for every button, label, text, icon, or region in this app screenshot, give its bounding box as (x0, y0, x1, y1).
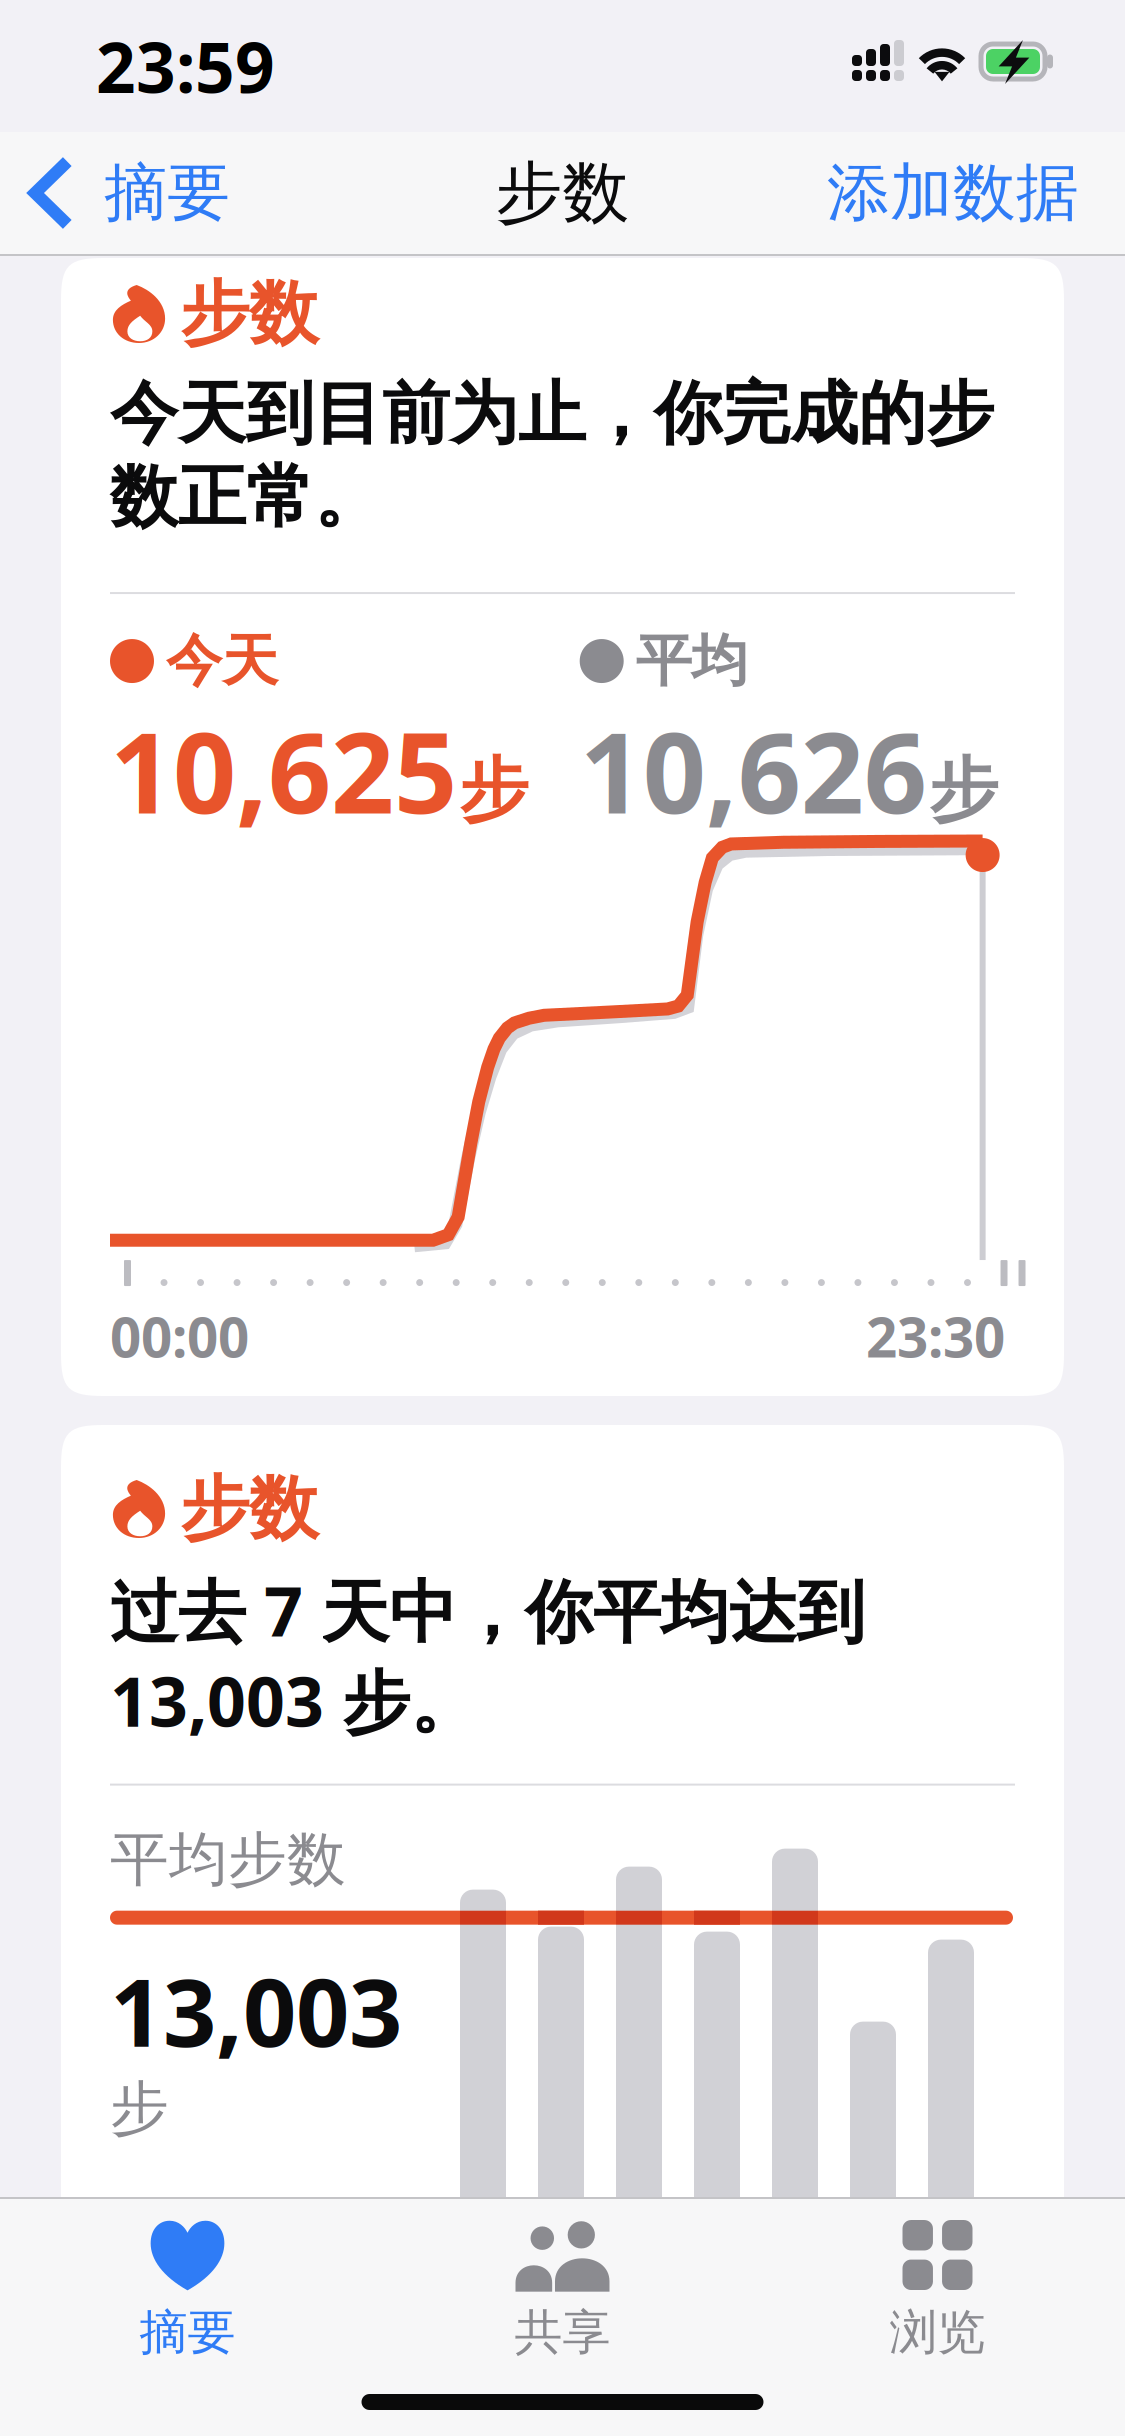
staticText: 今天到目前为止，你完成的步数正常。 (110, 372, 994, 539)
staticText: 共享 (514, 2303, 610, 2362)
staticText: 步数 (180, 271, 318, 357)
staticText: 步数 (180, 1466, 318, 1552)
button[interactable]: 摘要 (0, 2199, 375, 2359)
button[interactable]: 共享 (375, 2199, 750, 2359)
staticText: 今天 (166, 627, 278, 695)
staticText: 过去 7 天中，你平均达到 13,003 步。 (110, 1565, 865, 1746)
staticText: 步数 (495, 152, 629, 234)
staticText: 步 (929, 748, 998, 833)
staticText: 浏览 (889, 2303, 985, 2362)
staticText: 00:00 (110, 1300, 249, 1373)
button[interactable]: 浏览 (750, 2199, 1125, 2359)
staticText: 23:59 (96, 20, 275, 112)
staticText: 10,625 (110, 697, 457, 844)
button[interactable]: 摘要 (0, 132, 250, 254)
staticText: 步 (459, 748, 528, 833)
staticText: 23:30 (866, 1300, 1005, 1373)
staticText: 步 (110, 2073, 169, 2145)
staticText: 平均 (636, 627, 748, 695)
staticText: 13,003 (110, 1949, 402, 2073)
staticText: 10,626 (580, 697, 927, 844)
staticText: 摘要 (139, 2303, 235, 2362)
staticText: 平均步数 (110, 1824, 346, 1896)
staticText: 摘要 (104, 154, 230, 231)
button[interactable]: 添加数据 (797, 132, 1125, 254)
staticText: 添加数据 (827, 154, 1079, 231)
